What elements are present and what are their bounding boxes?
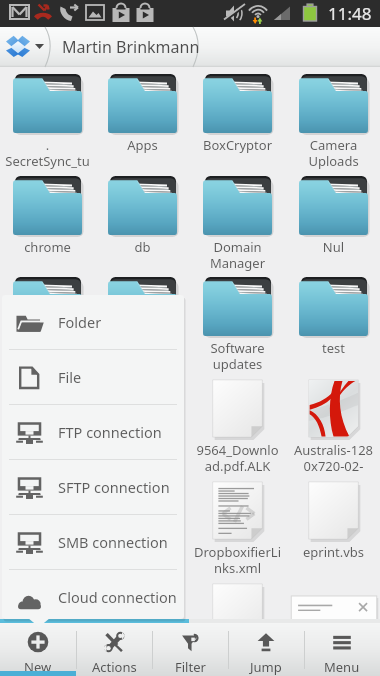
button[interactable]: SFTP connection: [2, 460, 184, 514]
staticText: FTP connection: [58, 422, 162, 442]
staticText: Software updates: [190, 339, 285, 372]
staticText: 9564_Downlo ad.pdf.ALK: [190, 441, 285, 474]
button[interactable]: Jump: [228, 623, 304, 676]
button[interactable]: eprint.vbs: [286, 471, 380, 561]
staticText: chrome: [0, 238, 95, 256]
button[interactable]: [286, 573, 380, 645]
button[interactable]: . SecretSync_tu: [0, 64, 95, 169]
button[interactable]: [0, 267, 95, 339]
button[interactable]: [0, 573, 95, 645]
button[interactable]: BoxCryptor: [190, 64, 285, 154]
button[interactable]: 9564_Downlo ad.pdf.ALK: [190, 369, 285, 474]
staticText: SFTP connection: [58, 477, 170, 497]
button[interactable]: Camera Uploads: [286, 64, 380, 169]
staticText: Apps: [95, 136, 190, 154]
staticText: SMB connection: [58, 532, 168, 552]
button[interactable]: Filter: [152, 623, 228, 676]
staticText: Domain Manager: [190, 238, 285, 271]
button[interactable]: Software updates: [190, 267, 285, 372]
button[interactable]: Apps: [95, 64, 190, 154]
staticText: Jump: [250, 658, 282, 676]
button[interactable]: [0, 369, 95, 441]
staticText: Camera Uploads: [286, 136, 380, 169]
staticText: Menu: [324, 658, 360, 676]
staticText: Australis-128 0x720-02-: [286, 441, 380, 474]
staticText: Cloud connection: [58, 587, 177, 607]
button[interactable]: Folder: [2, 295, 184, 349]
button[interactable]: [95, 267, 190, 339]
button[interactable]: New: [0, 623, 76, 676]
button[interactable]: File: [2, 350, 184, 404]
button[interactable]: Cloud connection: [2, 570, 184, 624]
button[interactable]: [0, 471, 95, 543]
staticText: . SecretSync_tu: [0, 136, 95, 169]
button[interactable]: DropboxifierLi nks.xml: [190, 471, 285, 576]
staticText: 11:48: [328, 2, 372, 25]
staticText: Folder: [58, 312, 102, 332]
button[interactable]: Account: [6, 34, 30, 57]
button[interactable]: Martin Brinkmann: [56, 27, 200, 67]
staticText: eprint.vbs: [286, 543, 380, 561]
button[interactable]: Menu: [304, 623, 380, 676]
button[interactable]: test: [286, 267, 380, 357]
button[interactable]: [95, 471, 190, 543]
staticText: Filter: [175, 658, 206, 676]
staticText: New: [24, 658, 52, 676]
button[interactable]: Domain Manager: [190, 166, 285, 271]
staticText: Martin Brinkmann: [62, 36, 200, 58]
button[interactable]: Nul: [286, 166, 380, 256]
button[interactable]: Open account menu: [34, 41, 45, 51]
staticText: test: [286, 339, 380, 357]
staticText: File: [58, 367, 82, 387]
button[interactable]: SMB connection: [2, 515, 184, 569]
button[interactable]: chrome: [0, 166, 95, 256]
button[interactable]: [95, 573, 190, 645]
staticText: DropboxifierLi nks.xml: [190, 543, 285, 576]
staticText: db: [95, 238, 190, 256]
button[interactable]: [95, 369, 190, 441]
staticText: Actions: [92, 658, 137, 676]
staticText: Nul: [286, 238, 380, 256]
button[interactable]: Actions: [76, 623, 152, 676]
button[interactable]: [190, 573, 285, 645]
staticText: BoxCryptor: [190, 136, 285, 154]
button[interactable]: db: [95, 166, 190, 256]
button[interactable]: Australis-128 0x720-02-: [286, 369, 380, 474]
button[interactable]: FTP connection: [2, 405, 184, 459]
